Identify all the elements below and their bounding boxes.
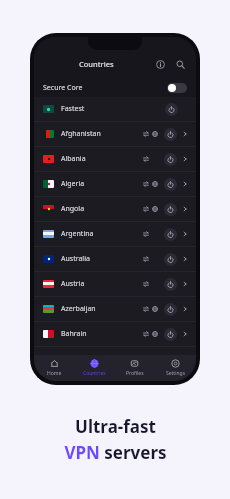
staticText: Afghanistan xyxy=(61,129,101,139)
button[interactable]: Angola xyxy=(34,197,196,221)
staticText: Algeria xyxy=(61,179,85,189)
button[interactable]: Expand Bahrain xyxy=(180,329,190,339)
staticText: Fastest xyxy=(61,104,85,114)
button[interactable]: Profiles xyxy=(114,355,155,381)
button[interactable]: Connect xyxy=(164,203,177,216)
button[interactable]: Algeria xyxy=(34,172,196,196)
staticText: Australia xyxy=(61,254,90,264)
staticText: Secure Core xyxy=(43,83,83,93)
button[interactable]: Albania xyxy=(34,147,196,171)
button[interactable]: Secure Core xyxy=(34,78,196,97)
button[interactable]: Connect xyxy=(165,103,178,116)
staticText: Bahrain xyxy=(61,329,87,339)
button[interactable]: Info xyxy=(152,56,168,72)
button[interactable]: Expand Albania xyxy=(180,154,190,164)
button[interactable]: Home xyxy=(34,355,74,381)
button[interactable]: Fastest xyxy=(34,97,196,121)
button[interactable]: Argentina xyxy=(34,222,196,246)
staticText: Azerbaijan xyxy=(61,304,96,314)
staticText: Settings xyxy=(166,370,186,377)
staticText: Albania xyxy=(61,154,86,164)
button[interactable]: Connect xyxy=(164,153,177,166)
button[interactable]: Expand Argentina xyxy=(180,229,190,239)
button[interactable]: Countries xyxy=(74,355,114,381)
button[interactable]: Connect xyxy=(164,303,177,316)
button[interactable]: Australia xyxy=(34,247,196,271)
staticText: Ultra-fast xyxy=(75,415,156,438)
button[interactable]: Afghanistan xyxy=(34,122,196,146)
button[interactable]: Expand Algeria xyxy=(180,179,190,189)
button[interactable]: Connect xyxy=(164,228,177,241)
staticText: Home xyxy=(47,370,62,377)
staticText: Profiles xyxy=(126,370,144,377)
button[interactable]: Azerbaijan xyxy=(34,297,196,321)
staticText: VPN servers xyxy=(64,441,167,464)
button[interactable]: Expand Austria xyxy=(180,279,190,289)
button[interactable]: Bahrain xyxy=(34,322,196,346)
staticText: Countries xyxy=(79,59,114,69)
button[interactable]: Expand Afghanistan xyxy=(180,129,190,139)
button[interactable]: Search xyxy=(172,56,188,72)
button[interactable]: Austria xyxy=(34,272,196,296)
button[interactable]: Connect xyxy=(164,328,177,341)
button[interactable]: Connect xyxy=(164,278,177,291)
button[interactable]: Expand Australia xyxy=(180,254,190,264)
button[interactable]: Connect xyxy=(164,128,177,141)
button[interactable]: Expand Azerbaijan xyxy=(180,304,190,314)
button[interactable]: Connect xyxy=(164,178,177,191)
staticText: Argentina xyxy=(61,229,94,239)
staticText: Countries xyxy=(83,370,106,377)
staticText: Angola xyxy=(61,204,85,214)
button[interactable]: Settings xyxy=(155,355,196,381)
button[interactable]: Connect xyxy=(164,253,177,266)
staticText: Austria xyxy=(61,279,85,289)
button[interactable]: Expand Angola xyxy=(180,204,190,214)
